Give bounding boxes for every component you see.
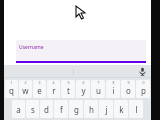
staticText: o bbox=[126, 85, 131, 96]
staticText: f bbox=[60, 104, 63, 115]
button[interactable]: 5 bbox=[61, 80, 75, 98]
staticText: 6 bbox=[82, 80, 85, 85]
button[interactable]: g bbox=[69, 100, 83, 118]
staticText: s bbox=[31, 104, 35, 115]
staticText: p bbox=[141, 85, 146, 96]
staticText: i bbox=[112, 85, 115, 96]
button[interactable]: 6 bbox=[76, 80, 90, 98]
staticText: t bbox=[67, 85, 70, 96]
staticText: d bbox=[44, 104, 49, 115]
button[interactable]: 3 bbox=[33, 80, 46, 98]
button[interactable]: 4 bbox=[47, 80, 60, 98]
staticText: 9 bbox=[127, 80, 130, 85]
button[interactable]: f bbox=[54, 100, 68, 118]
staticText: a bbox=[16, 104, 21, 115]
button[interactable]: j bbox=[99, 100, 113, 118]
staticText: e bbox=[37, 85, 42, 96]
staticText: g bbox=[74, 104, 79, 115]
staticText: 4 bbox=[52, 80, 55, 85]
staticText: j bbox=[105, 104, 108, 115]
staticText: u bbox=[96, 85, 101, 96]
button[interactable]: 7 bbox=[91, 80, 105, 98]
staticText: l bbox=[135, 104, 138, 115]
staticText: 5 bbox=[67, 80, 70, 85]
staticText: r bbox=[52, 85, 56, 96]
button[interactable]: 2 bbox=[19, 80, 32, 98]
button[interactable]: 1 bbox=[5, 80, 18, 98]
button[interactable]: 0 bbox=[136, 80, 150, 98]
staticText: 0 bbox=[142, 80, 145, 85]
button[interactable]: 8 bbox=[106, 80, 120, 98]
button[interactable]: d bbox=[40, 100, 53, 118]
staticText: y bbox=[81, 85, 86, 96]
button[interactable]: Username bbox=[16, 40, 146, 63]
button[interactable]: l bbox=[129, 100, 143, 118]
staticText: Username bbox=[19, 44, 44, 51]
staticText: 8 bbox=[112, 80, 115, 85]
staticText: 3 bbox=[38, 80, 41, 85]
staticText: 1 bbox=[10, 80, 13, 85]
button[interactable]: a bbox=[12, 100, 25, 118]
button[interactable]: h bbox=[84, 100, 98, 118]
button[interactable]: s bbox=[26, 100, 39, 118]
staticText: h bbox=[89, 104, 94, 115]
staticText: w bbox=[22, 85, 29, 96]
staticText: 2 bbox=[24, 80, 27, 85]
button[interactable]: 9 bbox=[121, 80, 135, 98]
staticText: k bbox=[119, 104, 124, 115]
button[interactable]: k bbox=[114, 100, 128, 118]
staticText: q bbox=[9, 85, 14, 96]
button[interactable]: Voice input bbox=[137, 66, 148, 77]
staticText: 7 bbox=[97, 80, 100, 85]
